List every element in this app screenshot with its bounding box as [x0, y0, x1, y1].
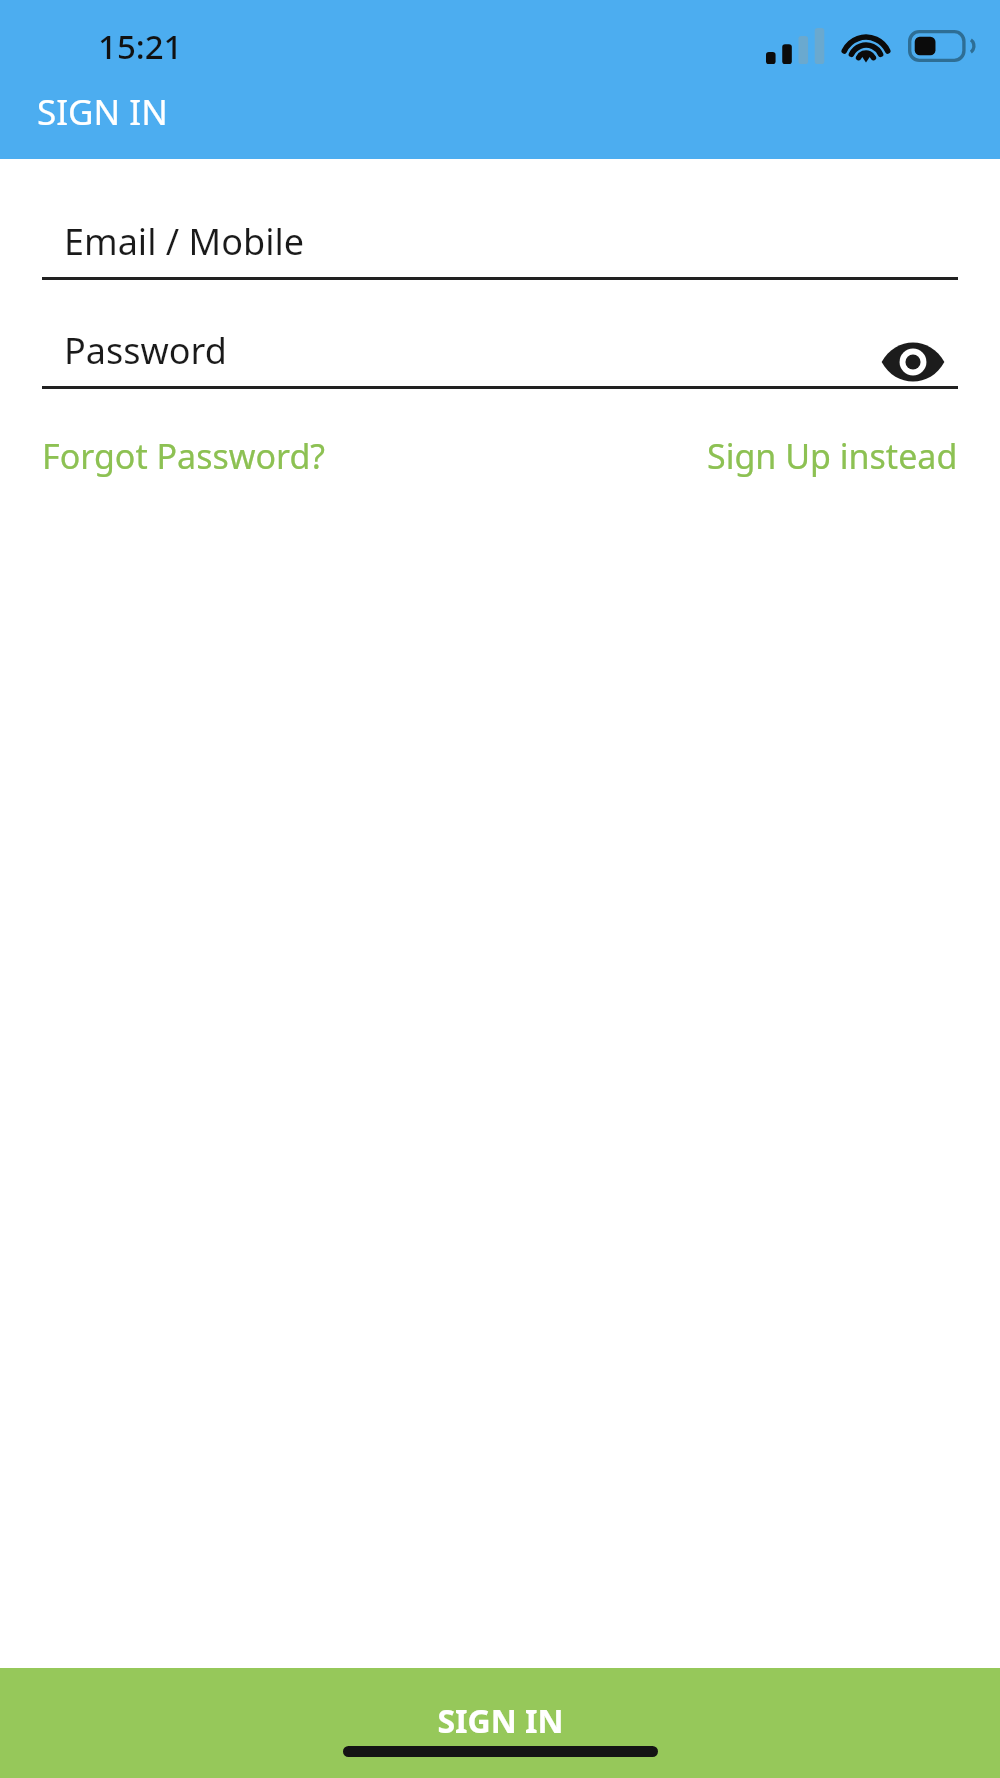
- button[interactable]: Forgot Password?: [42, 427, 500, 485]
- button[interactable]: Email / Mobile: [42, 205, 958, 277]
- button[interactable]: Show password: [876, 335, 950, 389]
- staticText: Sign Up instead: [707, 433, 958, 479]
- staticText: Password: [64, 326, 227, 375]
- staticText: SIGN IN: [437, 1699, 564, 1743]
- staticText: 15:21: [98, 24, 183, 69]
- button[interactable]: Password: [42, 314, 958, 386]
- staticText: Forgot Password?: [42, 433, 326, 479]
- staticText: Email / Mobile: [64, 217, 305, 266]
- staticText: SIGN IN: [37, 88, 168, 136]
- button[interactable]: Sign Up instead: [500, 427, 958, 485]
- button[interactable]: SIGN IN: [0, 1668, 1000, 1778]
